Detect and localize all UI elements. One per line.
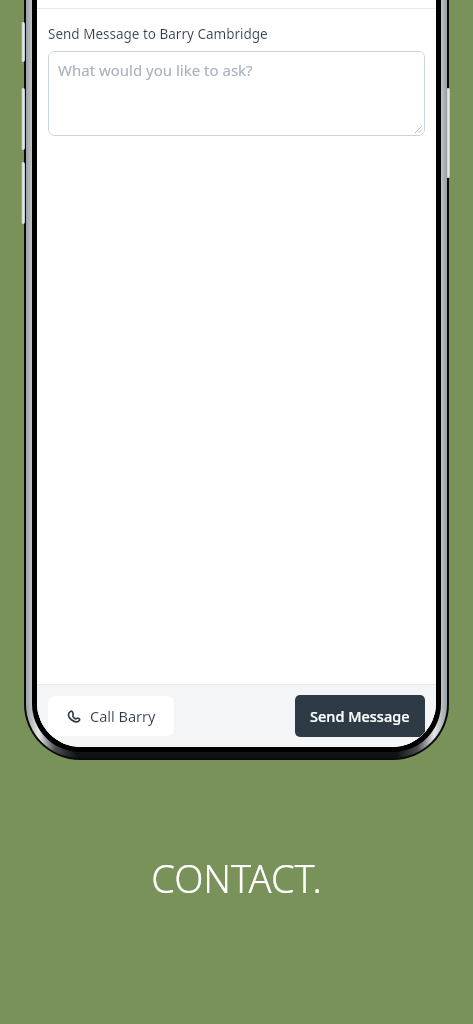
staticText: Send Message to Barry Cambridge (48, 25, 268, 43)
staticText: Call Barry (90, 706, 156, 726)
staticText: CONTACT. (151, 852, 322, 904)
staticText: Send Message (310, 706, 410, 726)
button[interactable]: What would you like to ask? (48, 51, 425, 136)
button[interactable]: Call (48, 696, 174, 736)
staticText: What would you like to ask? (58, 60, 253, 80)
button[interactable]: Send Message (295, 695, 425, 737)
other: Call (66, 709, 81, 724)
